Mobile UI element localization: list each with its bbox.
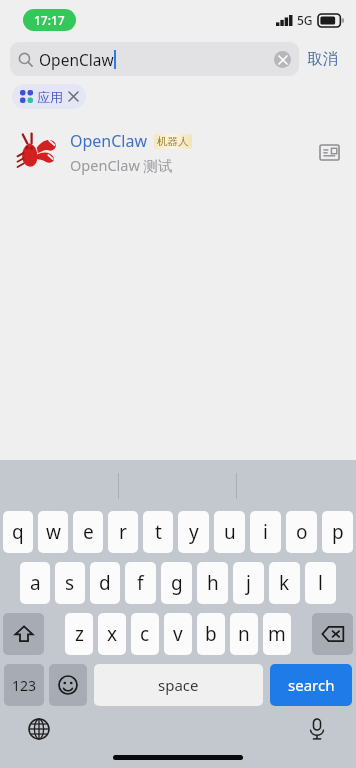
staticText: m <box>268 621 286 647</box>
button[interactable]: i <box>250 511 281 553</box>
button[interactable]: v <box>164 613 192 655</box>
staticText: 5G <box>297 12 313 28</box>
staticText: v <box>173 621 183 647</box>
staticText: d <box>99 570 111 596</box>
button[interactable]: Clear text <box>274 51 291 68</box>
button[interactable]: h <box>197 562 228 604</box>
staticText: s <box>65 570 75 596</box>
staticText: search <box>288 675 335 695</box>
button[interactable]: z <box>65 613 93 655</box>
button[interactable]: Shift <box>3 613 44 655</box>
staticText: 17:17 <box>34 12 65 28</box>
button[interactable]: o <box>286 511 317 553</box>
staticText: e <box>83 519 94 545</box>
button[interactable]: Voice input <box>304 716 330 742</box>
staticText: c <box>140 621 150 647</box>
button[interactable]: 应用 <box>12 84 86 109</box>
button[interactable]: y <box>178 511 209 553</box>
button[interactable]: search <box>270 664 352 706</box>
staticText: q <box>12 519 24 545</box>
staticText: g <box>171 570 183 596</box>
button[interactable]: d <box>90 562 120 604</box>
staticText: h <box>207 570 219 596</box>
button[interactable]: 123 <box>4 664 44 706</box>
staticText: y <box>189 519 199 545</box>
button[interactable]: Emoji <box>49 664 87 706</box>
staticText: space <box>158 675 199 695</box>
button[interactable]: w <box>38 511 68 553</box>
staticText: 取消 <box>307 49 338 69</box>
staticText: o <box>296 519 308 545</box>
button[interactable]: j <box>233 562 264 604</box>
staticText: OpenClaw <box>70 130 148 152</box>
button[interactable]: q <box>3 511 33 553</box>
staticText: w <box>46 519 61 545</box>
button[interactable]: g <box>161 562 192 604</box>
button[interactable]: r <box>108 511 138 553</box>
button[interactable]: e <box>73 511 103 553</box>
button[interactable]: space <box>94 664 263 706</box>
button[interactable]: Change keyboard language <box>26 716 52 742</box>
button[interactable]: l <box>305 562 336 604</box>
staticText: r <box>119 519 127 545</box>
staticText: p <box>332 519 344 545</box>
button[interactable]: Backspace <box>312 613 353 655</box>
button[interactable]: c <box>131 613 159 655</box>
button[interactable]: k <box>269 562 300 604</box>
button[interactable]: x <box>98 613 126 655</box>
staticText: i <box>263 519 268 545</box>
button[interactable]: n <box>230 613 258 655</box>
button[interactable]: s <box>55 562 85 604</box>
staticText: u <box>224 519 236 545</box>
staticText: OpenClaw 测试 <box>70 155 173 175</box>
button[interactable]: u <box>214 511 245 553</box>
staticText: j <box>246 570 251 596</box>
button[interactable]: p <box>322 511 353 553</box>
button[interactable]: f <box>125 562 156 604</box>
staticText: 应用 <box>37 89 63 105</box>
staticText: x <box>107 621 118 647</box>
staticText: n <box>238 621 250 647</box>
staticText: f <box>137 570 144 596</box>
staticText: l <box>318 570 323 596</box>
button[interactable]: a <box>20 562 50 604</box>
staticText: b <box>205 621 217 647</box>
button[interactable]: t <box>143 511 173 553</box>
button[interactable]: OpenClaw <box>10 42 299 76</box>
button[interactable]: m <box>263 613 291 655</box>
button[interactable]: OpenClaw <box>0 123 356 181</box>
button[interactable]: 取消 <box>299 45 346 73</box>
button[interactable]: Contact card <box>316 139 342 165</box>
staticText: 123 <box>12 676 37 695</box>
button[interactable]: b <box>197 613 225 655</box>
staticText: a <box>30 570 41 596</box>
staticText: k <box>279 570 290 596</box>
staticText: OpenClaw <box>39 49 114 70</box>
staticText: 机器人 <box>157 135 189 148</box>
staticText: z <box>75 621 84 647</box>
staticText: t <box>155 519 162 545</box>
